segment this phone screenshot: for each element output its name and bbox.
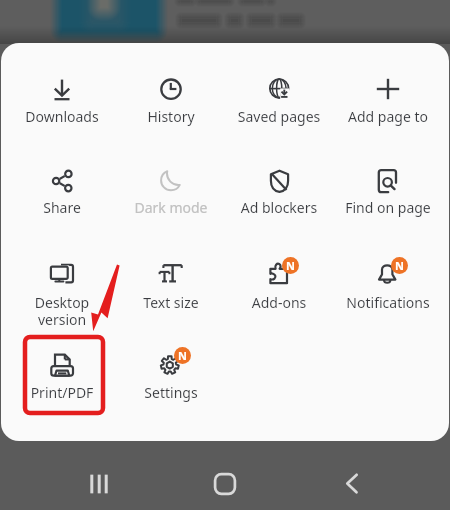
button[interactable]: N	[119, 352, 223, 402]
button[interactable]: Share	[10, 167, 114, 217]
staticText: Downloads	[10, 107, 114, 126]
staticText: Share	[10, 198, 114, 217]
staticText: Notifications	[336, 293, 440, 312]
staticText: Saved pages	[227, 107, 331, 126]
button[interactable]: Find on page	[336, 167, 440, 217]
staticText: N	[395, 258, 404, 273]
button[interactable]: Back	[288, 458, 414, 510]
button[interactable]: History	[119, 76, 223, 126]
staticText: Add-ons	[227, 293, 331, 312]
staticText: Print/PDF	[10, 383, 114, 402]
button[interactable]: Downloads	[10, 76, 114, 126]
staticText: N	[178, 348, 187, 363]
staticText: Dark mode	[119, 198, 223, 217]
button[interactable]: Desktop version	[10, 262, 114, 329]
staticText: Ad blockers	[227, 198, 331, 217]
button[interactable]: N	[227, 262, 331, 312]
button[interactable]: N	[336, 262, 440, 312]
button[interactable]: Saved pages	[227, 76, 331, 126]
staticText: Settings	[119, 383, 223, 402]
staticText: N	[286, 258, 295, 273]
staticText: Desktop version	[10, 293, 114, 329]
staticText: Add page to	[336, 107, 440, 126]
button[interactable]: Dark mode	[119, 167, 223, 217]
button[interactable]: Home	[162, 458, 288, 510]
staticText: Text size	[119, 293, 223, 312]
button[interactable]: Ad blockers	[227, 167, 331, 217]
button[interactable]: Add page to	[336, 76, 440, 126]
button[interactable]: Text size	[119, 262, 223, 312]
staticText: Find on page	[336, 198, 440, 217]
button[interactable]: Print/PDF	[10, 352, 114, 402]
button[interactable]: Recent apps	[36, 458, 162, 510]
staticText: History	[119, 107, 223, 126]
